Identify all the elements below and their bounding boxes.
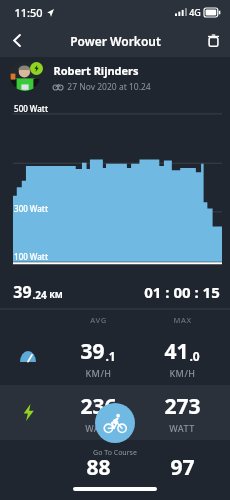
staticText: 236 — [80, 392, 117, 421]
button[interactable]: Delete — [196, 24, 230, 57]
staticText: 500 Watt — [14, 103, 48, 114]
staticText: 4G — [189, 6, 201, 18]
staticText: 11:50 — [14, 5, 43, 20]
staticText: 300 Watt — [14, 203, 48, 214]
staticText: Robert Rijnders — [53, 63, 139, 78]
staticText: 100 Watt — [14, 251, 48, 262]
staticText: 01 : 00 : 15 — [144, 282, 220, 302]
staticText: .24 — [32, 288, 47, 302]
button[interactable]: Robert Rijnders — [0, 57, 230, 99]
staticText: .1 — [105, 348, 116, 364]
staticText: Power Workout — [70, 33, 161, 49]
staticText: KM — [49, 289, 63, 301]
button[interactable]: Go To Course — [95, 403, 135, 443]
staticText: MAX — [173, 315, 192, 325]
staticText: KM/H — [169, 367, 196, 379]
button[interactable]: Back — [0, 24, 34, 57]
staticText: 97 — [170, 453, 195, 482]
button[interactable]: 88 — [0, 440, 230, 495]
staticText: WATT — [85, 422, 111, 434]
staticText: 41 — [164, 337, 189, 366]
staticText: 88 — [86, 453, 111, 482]
staticText: 273 — [164, 392, 201, 421]
staticText: 27 Nov 2020 at 10.24 — [67, 81, 151, 93]
staticText: 39 — [80, 337, 105, 366]
staticText: .0 — [189, 348, 200, 364]
button[interactable]: 236 — [0, 385, 230, 440]
staticText: AVG — [90, 315, 107, 325]
staticText: KM/H — [85, 367, 112, 379]
staticText: WATT — [169, 422, 195, 434]
button[interactable]: 39 — [0, 330, 230, 385]
staticText: Go To Course — [93, 448, 137, 458]
staticText: 39 — [13, 281, 32, 303]
